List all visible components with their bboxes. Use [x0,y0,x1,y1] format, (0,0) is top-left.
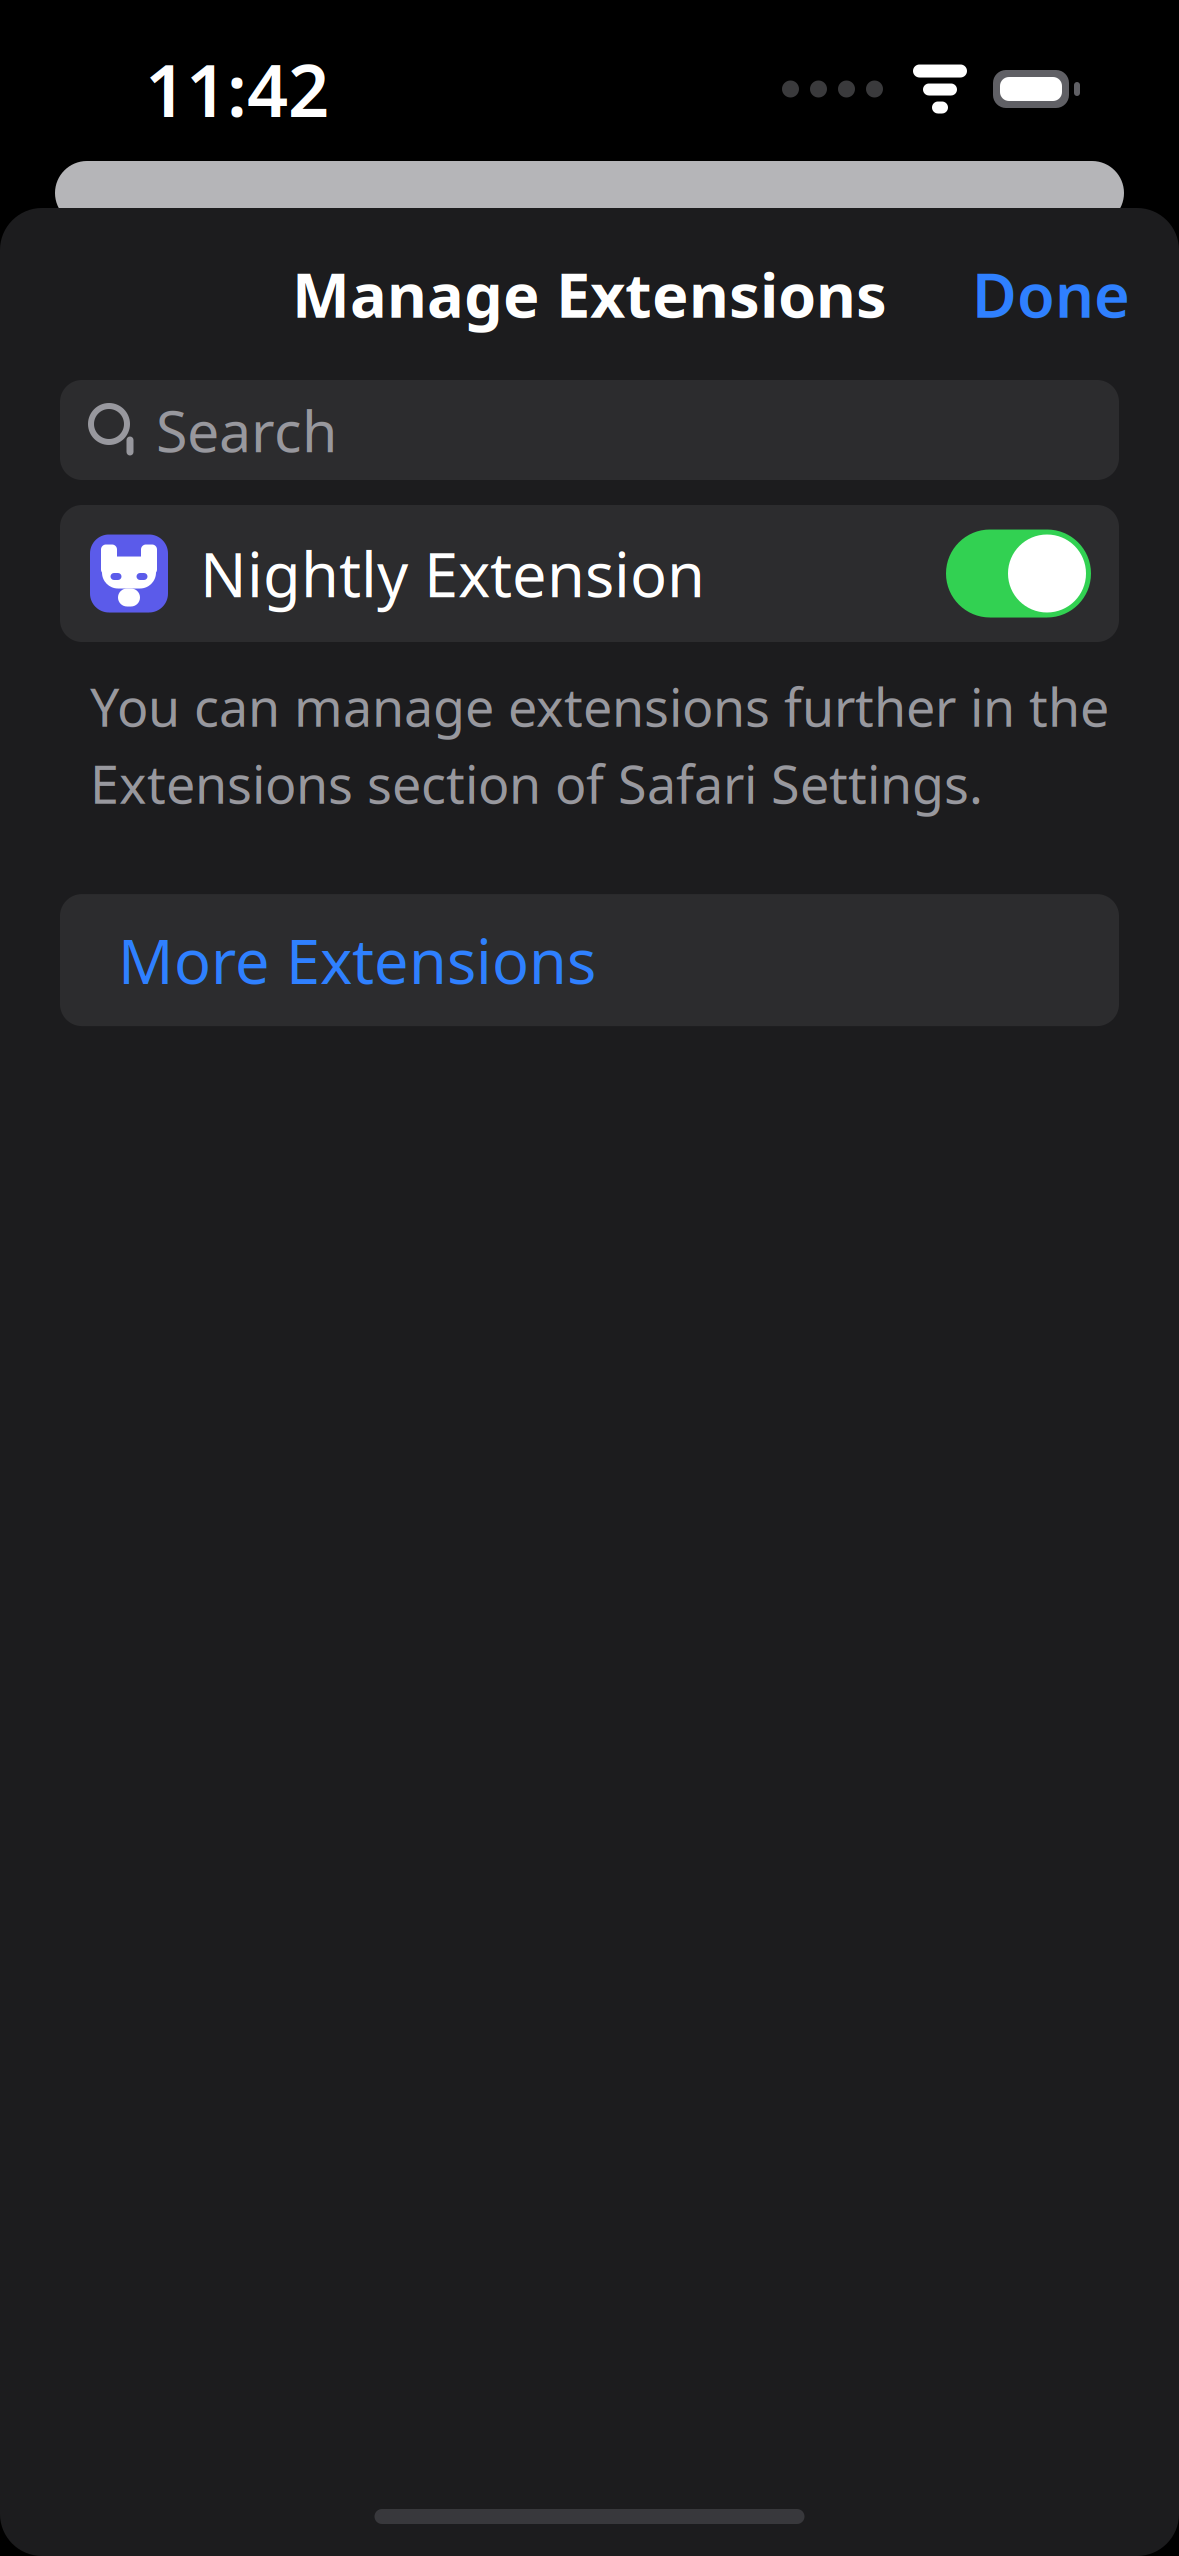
button[interactable]: Search [60,380,1119,480]
staticText: Search [156,392,337,468]
staticText: More Extensions [118,919,596,1001]
button[interactable]: Nightly Extension, on [946,529,1091,617]
staticText: Done [972,253,1130,335]
staticText: Nightly Extension [200,533,705,614]
button[interactable]: Nightly Extension [60,505,1119,642]
staticText: Manage Extensions [292,253,887,335]
button[interactable]: More Extensions [60,894,1119,1026]
staticText: You can manage extensions further in the [90,672,1109,741]
staticText: Extensions section of Safari Settings. [90,749,983,818]
staticText: 11:42 [145,41,329,137]
button[interactable]: Done [948,235,1154,353]
